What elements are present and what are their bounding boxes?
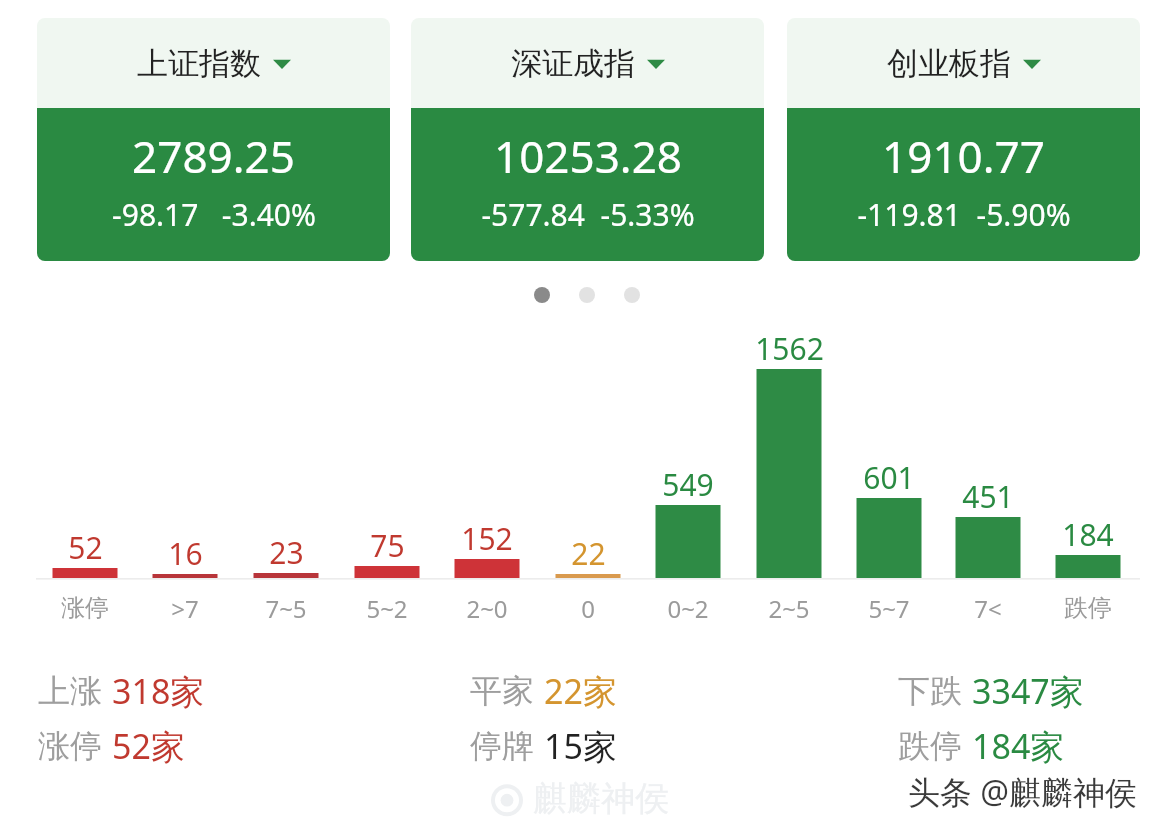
staticText: >7	[171, 592, 199, 624]
button[interactable]: 1562	[729, 327, 849, 369]
staticText: 3347家	[972, 668, 1084, 714]
staticText: 创业板指	[887, 44, 1011, 83]
staticText: 0~2	[667, 592, 709, 624]
button[interactable]: 601	[829, 456, 949, 498]
button[interactable]: 下跌	[898, 668, 1084, 714]
staticText: 23	[269, 532, 304, 573]
staticText: 平家	[470, 671, 534, 711]
staticText: 52	[68, 527, 103, 568]
staticText: 2~5	[768, 592, 810, 624]
button[interactable]: 深证成指	[411, 18, 764, 261]
button[interactable]: 16	[125, 532, 245, 574]
button[interactable]: 75	[327, 524, 447, 566]
staticText: 跌停	[898, 726, 962, 766]
staticText: -98.17 -3.40%	[112, 194, 316, 235]
staticText: 上涨	[38, 671, 102, 711]
staticText: 深证成指	[511, 44, 635, 83]
button[interactable]: 平家	[470, 668, 617, 714]
button[interactable]: 上涨	[38, 668, 205, 714]
button[interactable]: 停牌	[470, 723, 617, 769]
staticText: 1910.77	[882, 126, 1045, 186]
staticText: 0	[581, 592, 595, 624]
staticText: 下跌	[898, 671, 962, 711]
staticText: 2789.25	[132, 126, 295, 186]
button[interactable]: 549	[628, 463, 748, 505]
staticText: 2~0	[466, 592, 508, 624]
button[interactable]: 创业板指	[787, 18, 1140, 261]
staticText: 跌停	[1064, 593, 1112, 623]
staticText: 麒麟神侯	[533, 777, 669, 817]
staticText: 15家	[544, 723, 617, 769]
button[interactable]: 23	[226, 531, 346, 573]
button[interactable]: 上证指数	[37, 18, 390, 261]
staticText: 7<	[974, 592, 1002, 624]
staticText: 7~5	[265, 592, 307, 624]
button[interactable]: 跌停	[898, 723, 1065, 769]
staticText: 16	[168, 533, 203, 574]
staticText: 头条 @麒麟神侯	[908, 770, 1138, 814]
staticText: 318家	[112, 668, 205, 714]
staticText: 184家	[972, 723, 1065, 769]
staticText: 184	[1062, 514, 1114, 555]
staticText: -577.84 -5.33%	[481, 194, 695, 235]
staticText: -119.81 -5.90%	[857, 194, 1071, 235]
button[interactable]: 451	[928, 475, 1048, 517]
staticText: 涨停	[38, 726, 102, 766]
staticText: 5~2	[366, 592, 408, 624]
staticText: 549	[662, 464, 714, 505]
staticText: 52家	[112, 723, 185, 769]
staticText: 上证指数	[137, 44, 261, 83]
button[interactable]: 184	[1028, 513, 1148, 555]
staticText: 1562	[755, 328, 824, 369]
staticText: 451	[962, 476, 1014, 517]
staticText: 152	[461, 518, 513, 559]
button[interactable]: 152	[427, 517, 547, 559]
staticText: 10253.28	[494, 126, 682, 186]
staticText: 涨停	[61, 593, 109, 623]
staticText: 22家	[544, 668, 617, 714]
staticText: 601	[863, 457, 915, 498]
staticText: 5~7	[868, 592, 910, 624]
staticText: 75	[370, 525, 405, 566]
button[interactable]: 涨停	[38, 723, 185, 769]
button[interactable]: 22	[528, 532, 648, 574]
button[interactable]: 52	[25, 526, 145, 568]
staticText: 停牌	[470, 726, 534, 766]
staticText: 22	[571, 533, 606, 574]
